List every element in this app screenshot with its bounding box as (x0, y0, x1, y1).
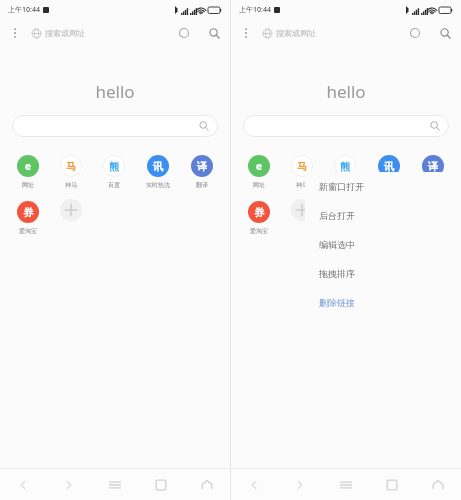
staticText: 编辑选中 (319, 239, 355, 250)
button[interactable]: 后台打开 (319, 201, 461, 230)
staticText: e (256, 159, 262, 173)
button[interactable]: 讯 (136, 153, 180, 191)
staticText: 译 (197, 160, 207, 173)
button[interactable]: Reload (405, 23, 425, 43)
staticText: 翻译 (196, 181, 208, 189)
button[interactable]: 熊 (92, 153, 136, 191)
staticText: 熊 (109, 160, 119, 173)
button[interactable]: Add shortcut (291, 199, 313, 233)
button[interactable]: Home (415, 469, 461, 500)
staticText: 实时热沈 (146, 181, 170, 189)
staticText: 神马 (296, 181, 308, 189)
button[interactable]: Search box (12, 115, 218, 137)
staticText: 网址 (253, 181, 265, 189)
staticText: 神马 (65, 181, 77, 189)
staticText: 券 (254, 206, 264, 219)
button[interactable]: 新窗口打开 (319, 172, 461, 201)
button[interactable]: Search (204, 23, 224, 43)
button[interactable]: 讯 (367, 153, 411, 191)
staticText: 搜索或网址 (45, 28, 85, 38)
staticText: 新窗口打开 (319, 181, 364, 192)
button[interactable]: Reload (174, 23, 194, 43)
button[interactable]: 译 (411, 153, 455, 191)
staticText: 爱淘宝 (19, 227, 37, 235)
staticText: hello (231, 80, 461, 103)
button[interactable]: Tabs (369, 469, 415, 500)
staticText: 讯 (153, 160, 163, 173)
button[interactable]: Search box (243, 115, 449, 137)
button[interactable]: 马 (49, 153, 92, 191)
button[interactable]: e (237, 153, 280, 191)
staticText: 马 (66, 160, 76, 173)
staticText: 后台打开 (319, 210, 355, 221)
button[interactable]: 券 (6, 199, 49, 237)
staticText: 删除链接 (319, 297, 355, 308)
button[interactable]: Home (184, 469, 230, 500)
staticText: 马 (297, 160, 307, 173)
staticText: 上午10:44 (8, 5, 40, 15)
staticText: 译 (428, 160, 438, 173)
button[interactable]: 马 (280, 153, 323, 191)
button[interactable]: e (6, 153, 49, 191)
staticText: e (25, 159, 31, 173)
button[interactable]: 译 (180, 153, 224, 191)
button[interactable]: 编辑选中 (319, 230, 461, 259)
staticText: 搜索或网址 (276, 28, 316, 38)
staticText: 上午10:44 (239, 5, 271, 15)
button[interactable]: Add shortcut (60, 199, 82, 233)
button[interactable]: Tabs (138, 469, 184, 500)
button[interactable]: 熊 (323, 153, 367, 191)
staticText: 爱淘宝 (250, 227, 268, 235)
staticText: hello (0, 80, 230, 103)
button[interactable]: 删除链接 (319, 288, 461, 317)
button[interactable]: Search (435, 23, 455, 43)
staticText: 网址 (22, 181, 34, 189)
button[interactable]: Menu (92, 469, 138, 500)
button[interactable]: Menu (323, 469, 369, 500)
button[interactable]: More options (237, 24, 255, 42)
button[interactable]: More options (6, 24, 24, 42)
staticText: 百度 (339, 181, 351, 189)
staticText: 百度 (108, 181, 120, 189)
staticText: 讯 (384, 160, 394, 173)
staticText: 拖拽排序 (319, 268, 355, 279)
staticText: 券 (23, 206, 33, 219)
button[interactable]: 券 (237, 199, 280, 237)
button[interactable]: 拖拽排序 (319, 259, 461, 288)
staticText: 熊 (340, 160, 350, 173)
